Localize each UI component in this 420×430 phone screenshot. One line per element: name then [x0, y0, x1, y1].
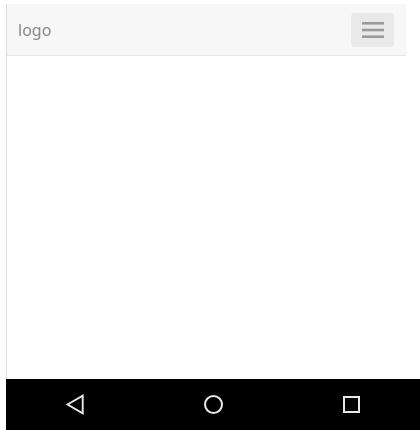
button[interactable]: Recent apps	[282, 379, 420, 430]
button[interactable]: Home	[144, 379, 282, 430]
button[interactable]: Back	[6, 379, 144, 430]
staticText: logo	[18, 19, 52, 41]
button[interactable]: Open menu	[351, 13, 394, 47]
button[interactable]: logo	[18, 19, 52, 41]
